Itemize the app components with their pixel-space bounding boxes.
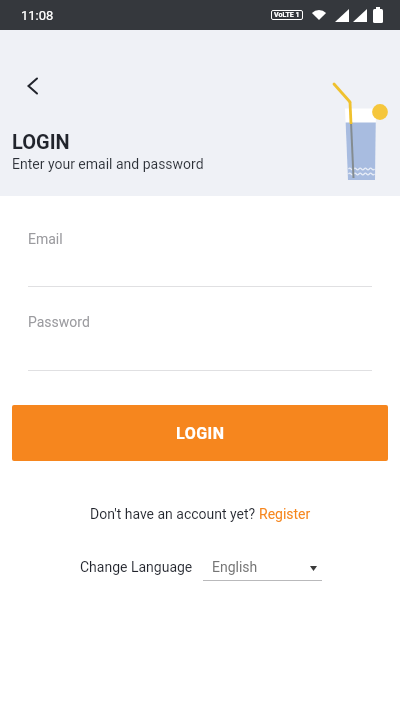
button[interactable]: Register <box>259 506 311 522</box>
button[interactable]: LOGIN <box>12 405 388 461</box>
staticText: LOGIN <box>12 130 70 153</box>
staticText: Password <box>28 314 90 330</box>
staticText: LOGIN <box>176 424 225 443</box>
button[interactable]: English <box>203 554 322 582</box>
staticText: Enter your email and password <box>12 156 204 172</box>
staticText: Don't have an account yet? <box>90 506 259 522</box>
button[interactable] <box>16 70 48 102</box>
staticText: 11:08 <box>21 8 54 23</box>
staticText: Change Language <box>80 559 193 575</box>
staticText: VoLTE 1 <box>274 11 300 19</box>
staticText: English <box>212 559 258 575</box>
staticText: Email <box>28 231 63 247</box>
